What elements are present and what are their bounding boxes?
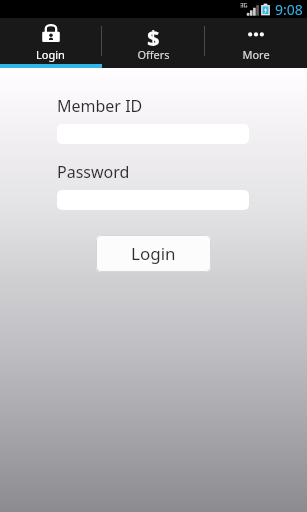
other: Login xyxy=(41,23,61,45)
other: More xyxy=(244,24,268,44)
button[interactable]: Offers xyxy=(102,18,204,64)
staticText: Login xyxy=(131,242,176,265)
button[interactable]: Login xyxy=(96,235,211,272)
staticText: $ xyxy=(147,22,160,46)
staticText: Password xyxy=(57,161,130,183)
staticText: Login xyxy=(36,47,65,62)
staticText: More xyxy=(242,47,270,62)
staticText: Offers xyxy=(137,47,170,62)
button[interactable]: More xyxy=(205,18,307,64)
other: Offers xyxy=(141,22,165,46)
staticText: Member ID xyxy=(57,95,143,117)
staticText: 9:08 xyxy=(275,0,303,18)
button[interactable]: Login xyxy=(0,18,101,64)
